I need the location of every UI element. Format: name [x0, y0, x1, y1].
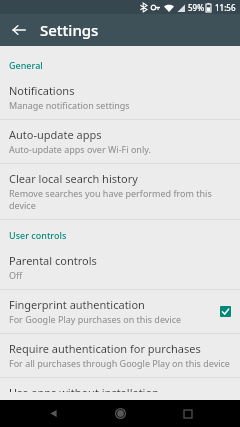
staticText: Clear local search history — [9, 171, 138, 186]
staticText: Settings — [40, 20, 99, 40]
button[interactable]: Fingerprint authentication toggle — [219, 305, 232, 318]
staticText: 59% — [188, 2, 204, 13]
staticText: For Google Play purchases on this device — [9, 313, 182, 325]
staticText: For all purchases through Google Play on… — [9, 357, 230, 369]
button[interactable]: Fingerprint authentication — [0, 290, 240, 333]
staticText: Use apps without installation — [9, 385, 159, 392]
staticText: User controls — [9, 229, 67, 241]
staticText: General — [9, 59, 43, 71]
staticText: Require authentication for purchases — [9, 341, 201, 356]
button[interactable]: Home — [105, 400, 135, 427]
button[interactable]: Clear local search history — [0, 164, 240, 219]
staticText: 11:56 — [215, 2, 236, 13]
button[interactable]: Back — [38, 400, 68, 427]
button[interactable]: Recents — [173, 400, 203, 427]
button[interactable]: Require authentication for purchases — [0, 334, 240, 377]
button[interactable]: Auto-update apps — [0, 120, 240, 163]
staticText: Auto-update apps over Wi-Fi only. — [9, 143, 151, 155]
staticText: Notifications — [9, 83, 75, 98]
staticText: Remove searches you have performed from … — [9, 187, 232, 211]
button[interactable]: Use apps without installation — [0, 378, 240, 400]
button[interactable]: Notifications — [0, 76, 240, 119]
staticText: Off — [9, 269, 23, 281]
staticText: Parental controls — [9, 253, 97, 268]
staticText: Manage notification settings — [9, 99, 130, 111]
staticText: Fingerprint authentication — [9, 297, 145, 312]
button[interactable]: Parental controls — [0, 246, 240, 289]
button[interactable]: Back — [6, 17, 32, 43]
staticText: Auto-update apps — [9, 127, 102, 142]
